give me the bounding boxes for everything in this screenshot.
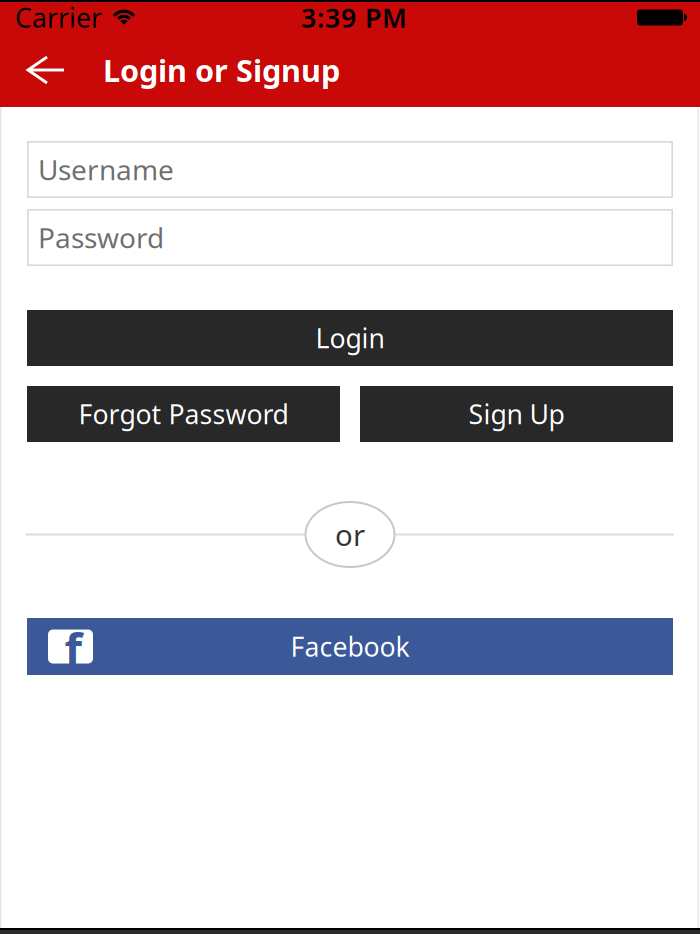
- staticText: Sign Up: [468, 396, 564, 432]
- staticText: Login: [315, 320, 384, 356]
- staticText: Password: [38, 219, 164, 256]
- staticText: or: [335, 515, 365, 554]
- staticText: Login or Signup: [103, 50, 340, 90]
- button[interactable]: Username: [27, 141, 673, 198]
- button[interactable]: Login: [27, 310, 673, 366]
- button[interactable]: Forgot Password: [27, 386, 340, 442]
- staticText: Facebook: [290, 629, 409, 664]
- button[interactable]: Password: [27, 209, 673, 266]
- staticText: Forgot Password: [78, 396, 288, 432]
- button[interactable]: f: [27, 618, 673, 675]
- staticText: 3:39 PM: [301, 0, 407, 35]
- staticText: f: [64, 618, 82, 679]
- button[interactable]: Sign Up: [360, 386, 673, 442]
- button[interactable]: Back: [0, 56, 83, 84]
- staticText: Carrier: [15, 0, 102, 35]
- staticText: Username: [38, 151, 174, 188]
